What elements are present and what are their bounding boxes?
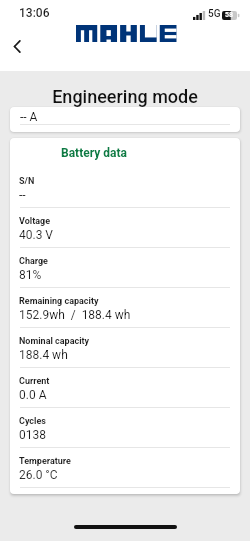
button[interactable]: Back (3, 32, 31, 60)
staticText: Temperature (19, 456, 71, 467)
staticText: 152.9wh / 188.4 wh (19, 308, 131, 322)
staticText: 5G (208, 8, 221, 20)
staticText: 0.0 A (19, 388, 47, 402)
staticText: 58 (225, 11, 234, 19)
staticText: 40.3 V (19, 228, 54, 242)
staticText: 81% (19, 268, 42, 282)
staticText: 26.0 °C (19, 468, 58, 482)
staticText: -- (19, 188, 26, 202)
staticText: 13:06 (19, 6, 50, 20)
staticText: -- A (20, 110, 38, 124)
staticText: Nominal capacity (19, 336, 90, 347)
staticText: Voltage (19, 216, 51, 227)
staticText: 0138 (19, 428, 46, 442)
staticText: Remaining capacity (19, 296, 99, 307)
staticText: Battery data (61, 146, 127, 160)
staticText: Current (19, 376, 50, 387)
staticText: S/N (19, 176, 35, 187)
staticText: Cycles (19, 416, 46, 427)
button[interactable]: -- A (10, 107, 240, 132)
staticText: 188.4 wh (19, 348, 68, 362)
staticText: Charge (19, 256, 48, 267)
staticText: Engineering mode (0, 86, 250, 107)
